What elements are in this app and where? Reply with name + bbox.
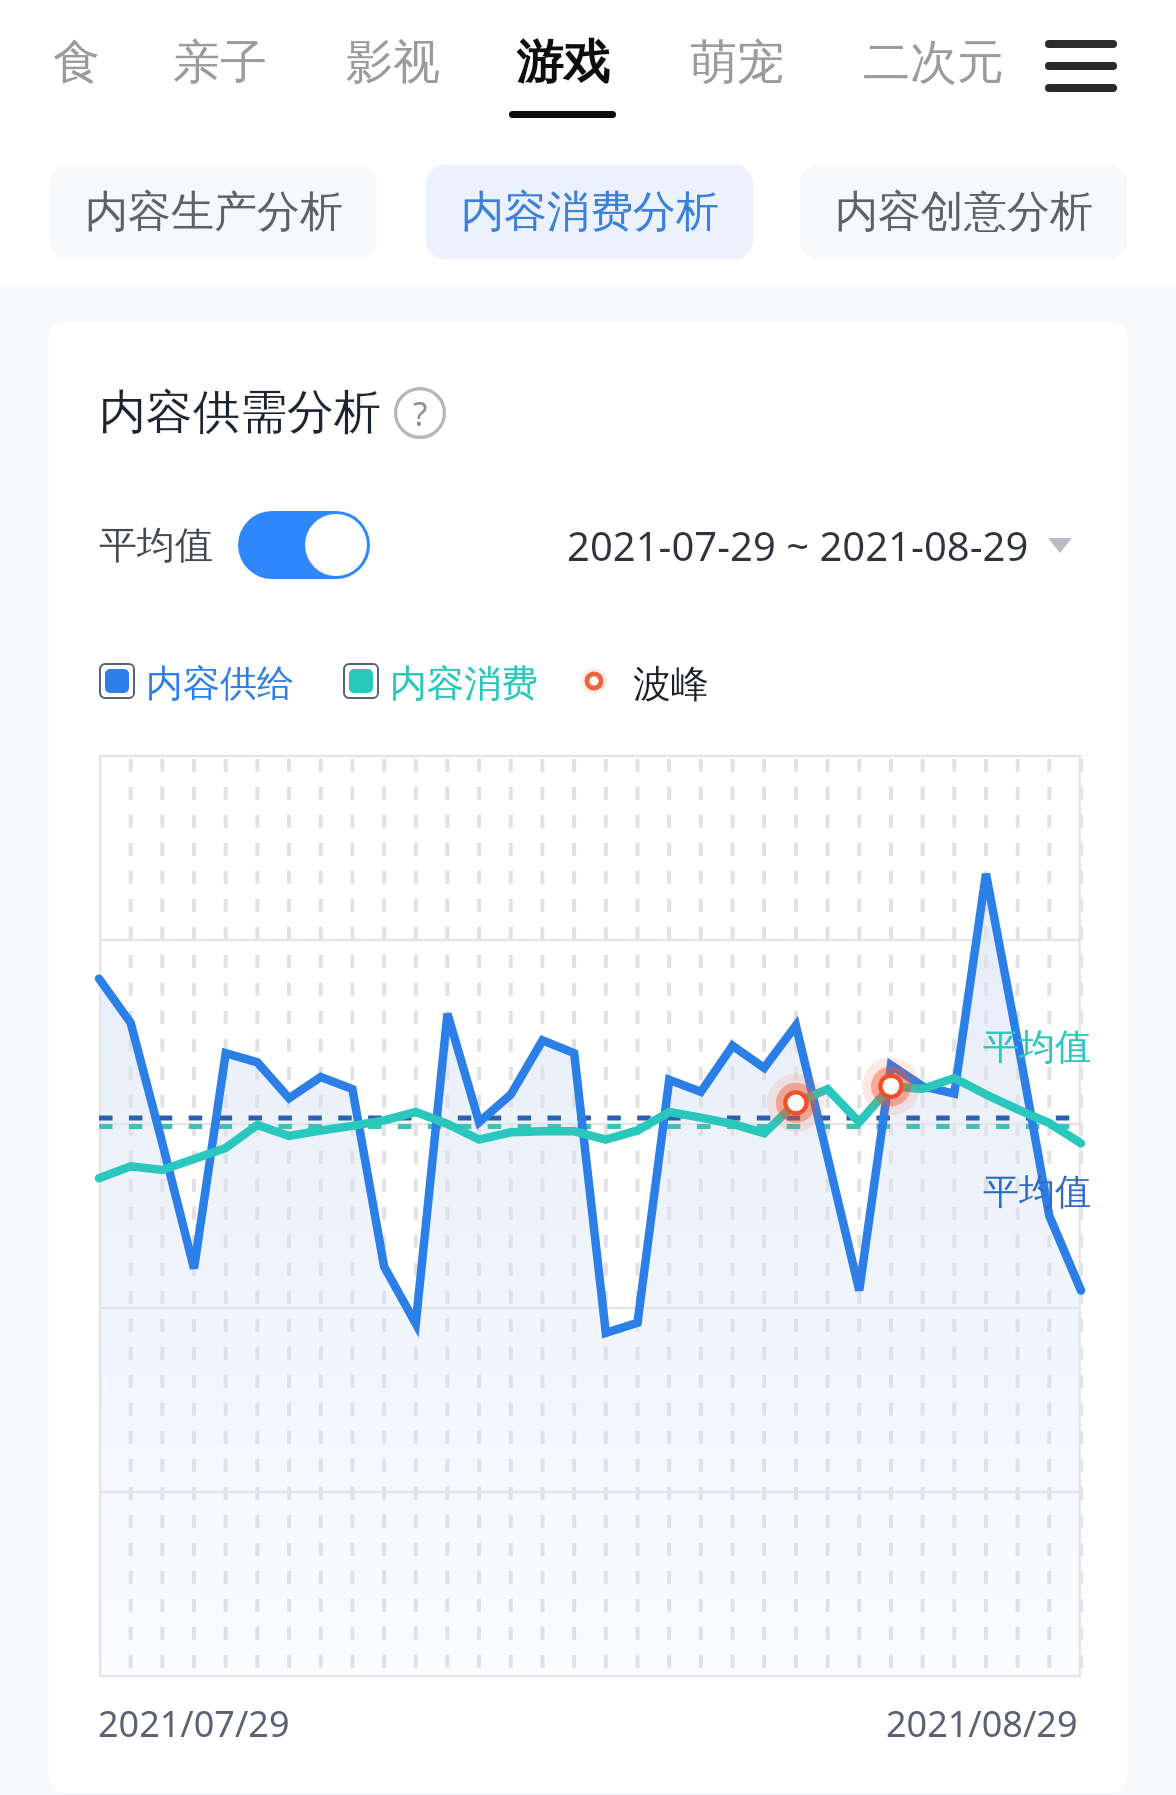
button[interactable]: 亲子 [160,10,280,125]
button[interactable]: 波峰 [564,660,709,702]
staticText: 平均值 [99,521,213,569]
button[interactable]: 平均值 [99,511,376,579]
staticText: 内容创意分析 [835,185,1093,239]
staticText: 2021/07/29 [98,1699,290,1748]
button[interactable]: 内容供给 [99,660,294,702]
staticText: 2021-07-29 ~ 2021-08-29 [567,518,1029,572]
staticText: 波峰 [633,660,709,702]
button[interactable]: 内容创意分析 [800,165,1127,259]
staticText: 游戏 [516,33,610,92]
staticText: 食 [53,33,100,92]
staticText: 内容消费 [390,660,538,702]
other: Help [394,387,446,439]
button[interactable]: 内容生产分析 [50,165,377,259]
button[interactable]: 内容消费分析 [426,165,753,259]
staticText: 影视 [346,33,440,92]
staticText: 内容供需分析 [99,383,381,442]
button[interactable]: 影视 [330,10,455,125]
staticText: 平均值 [983,1169,1091,1214]
staticText: 内容供给 [146,660,294,702]
staticText: 亲子 [173,33,267,92]
staticText: 内容消费分析 [461,185,719,239]
button[interactable]: 2021-07-29 ~ 2021-08-29 [567,511,1072,579]
button[interactable]: 内容供需分析 [99,383,446,442]
staticText: 2021/08/29 [886,1699,1078,1748]
button[interactable]: Menu [1035,28,1128,100]
button[interactable]: 二次元 [847,10,1020,125]
staticText: 萌宠 [690,33,784,92]
staticText: 二次元 [863,33,1004,92]
button[interactable]: 食 [40,10,113,125]
button[interactable]: 萌宠 [673,10,801,125]
staticText: 内容生产分析 [85,185,343,239]
button[interactable]: 内容消费 [343,660,538,702]
staticText: 平均值 [983,1024,1091,1069]
button[interactable]: 游戏 [498,10,627,125]
staticText: ? [413,391,428,436]
